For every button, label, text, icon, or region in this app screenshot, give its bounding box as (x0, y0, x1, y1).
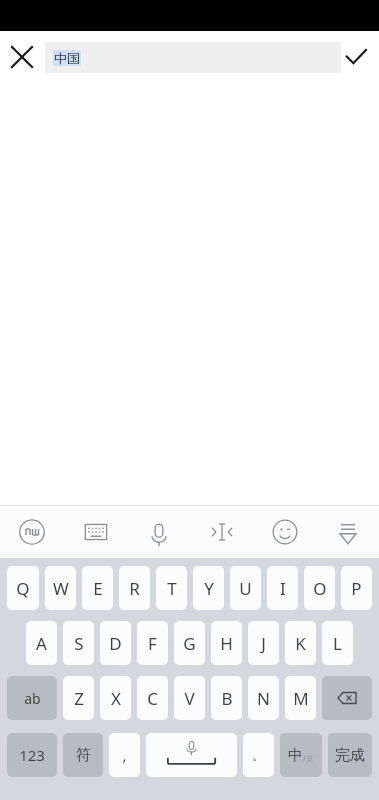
button[interactable]: ab (7, 676, 57, 720)
button[interactable]: U (230, 566, 261, 610)
button[interactable]: C (137, 676, 168, 720)
staticText: S (74, 632, 84, 655)
button[interactable]: 中 (280, 733, 322, 777)
button[interactable]: O (304, 566, 335, 610)
button[interactable]: N (248, 676, 279, 720)
button[interactable]: D (100, 621, 131, 665)
button[interactable]: R (119, 566, 150, 610)
button[interactable]: Q (7, 566, 39, 610)
button[interactable]: A (26, 621, 57, 665)
staticText: 123 (19, 745, 45, 765)
staticText: W (53, 577, 69, 600)
button[interactable]: Cancel (4, 39, 40, 75)
staticText: B (221, 687, 233, 710)
staticText: 符 (76, 746, 91, 765)
button[interactable]: V (174, 676, 205, 720)
button[interactable]: P (341, 566, 372, 610)
button[interactable]: Confirm (337, 38, 375, 76)
staticText: M (293, 687, 309, 710)
button[interactable]: J (248, 621, 279, 665)
staticText: 。 (252, 747, 265, 763)
button[interactable]: W (45, 566, 76, 610)
button[interactable]: 中国 (45, 42, 341, 73)
button[interactable]: S (63, 621, 94, 665)
button[interactable]: E (82, 566, 113, 610)
button[interactable]: T (156, 566, 187, 610)
staticText: E (93, 577, 103, 600)
staticText: G (183, 632, 196, 655)
staticText: 完成 (335, 746, 365, 765)
staticText: Y (204, 577, 214, 600)
button[interactable]: Input method (0, 505, 64, 558)
staticText: K (295, 632, 306, 655)
button[interactable]: 123 (7, 733, 57, 777)
staticText: ab (24, 689, 41, 708)
button[interactable]: Emoji (253, 505, 316, 558)
button[interactable]: Keyboard layout (64, 505, 127, 558)
staticText: R (129, 577, 140, 600)
staticText: N (257, 687, 270, 710)
button[interactable]: Move cursor (190, 505, 253, 558)
staticText: , (122, 745, 127, 765)
button[interactable]: H (211, 621, 242, 665)
staticText: O (313, 577, 327, 600)
staticText: P (351, 577, 362, 600)
button[interactable]: B (211, 676, 242, 720)
button[interactable]: , (109, 733, 140, 777)
button[interactable]: I (267, 566, 298, 610)
button[interactable]: K (285, 621, 316, 665)
staticText: V (184, 687, 195, 710)
staticText: Q (16, 577, 30, 600)
staticText: F (148, 632, 157, 655)
button[interactable]: 符 (63, 733, 103, 777)
staticText: I (280, 577, 286, 600)
button[interactable]: Voice input (127, 505, 190, 558)
staticText: T (167, 577, 177, 600)
staticText: D (109, 632, 122, 655)
staticText: 中国 (54, 50, 80, 66)
button[interactable]: 完成 (328, 733, 372, 777)
staticText: L (333, 632, 342, 655)
button[interactable]: M (285, 676, 316, 720)
button[interactable]: F (137, 621, 168, 665)
staticText: H (220, 632, 233, 655)
button[interactable]: Space (146, 733, 237, 777)
staticText: 中 (288, 746, 303, 765)
button[interactable]: Y (193, 566, 224, 610)
staticText: /英 (303, 753, 314, 764)
button[interactable]: Backspace (322, 676, 372, 720)
staticText: C (147, 687, 158, 710)
staticText: J (261, 632, 266, 655)
button[interactable]: Z (63, 676, 94, 720)
button[interactable]: Hide keyboard (316, 505, 379, 558)
button[interactable]: X (100, 676, 131, 720)
staticText: A (36, 632, 47, 655)
staticText: Z (74, 687, 84, 710)
staticText: X (111, 687, 121, 710)
button[interactable]: 。 (243, 733, 274, 777)
button[interactable]: L (322, 621, 353, 665)
staticText: U (239, 577, 252, 600)
button[interactable]: G (174, 621, 205, 665)
